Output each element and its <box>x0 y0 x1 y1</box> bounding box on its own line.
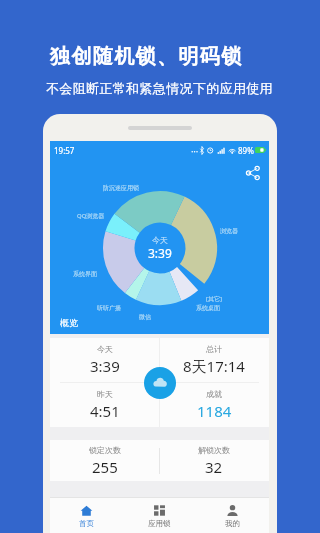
button[interactable]: 应用锁 <box>123 498 196 533</box>
staticText: QQ浏览器 <box>77 212 105 220</box>
staticText: 系统界面 <box>73 270 97 278</box>
staticText: 概览 <box>60 317 78 328</box>
staticText: 首页 <box>79 519 94 528</box>
staticText: [其它] <box>206 295 222 303</box>
staticText: 成就 <box>206 389 222 399</box>
button[interactable]: 昨天 <box>50 382 159 427</box>
staticText: 3:39 <box>148 245 172 261</box>
staticText: 3:39 <box>90 356 120 376</box>
staticText: 解锁次数 <box>198 445 230 455</box>
staticText: 浏览器 <box>220 227 238 235</box>
button[interactable]: Cloud <box>144 367 176 399</box>
staticText: 4:51 <box>90 401 120 421</box>
button[interactable]: 今天 <box>50 338 159 382</box>
staticText: 8天17:14 <box>183 356 245 376</box>
staticText: 锁定次数 <box>89 445 121 455</box>
staticText: 不会阻断正常和紧急情况下的应用使用 <box>46 80 273 96</box>
button[interactable]: 我的 <box>196 498 269 533</box>
staticText: 今天 <box>152 235 168 245</box>
staticText: 89% <box>238 145 254 156</box>
staticText: 1184 <box>197 401 232 421</box>
button[interactable]: Share <box>245 165 261 181</box>
button[interactable]: 锁定次数 <box>50 440 159 481</box>
staticText: 255 <box>92 457 118 477</box>
staticText: 独创随机锁、明码锁 <box>50 44 243 69</box>
button[interactable]: 解锁次数 <box>159 440 269 481</box>
button[interactable]: 成就 <box>159 382 269 427</box>
staticText: 昨天 <box>97 389 113 399</box>
staticText: 系统桌面 <box>196 304 220 312</box>
staticText: 总计 <box>206 344 222 354</box>
staticText: 32 <box>205 457 223 477</box>
button[interactable]: 总计 <box>159 338 269 382</box>
staticText: 防沉迷应用锁 <box>103 184 139 192</box>
staticText: 应用锁 <box>148 519 171 528</box>
staticText: 19:57 <box>54 145 75 156</box>
staticText: 微信 <box>139 313 151 321</box>
staticText: 听听广播 <box>97 304 121 312</box>
staticText: 我的 <box>225 519 240 528</box>
staticText: 今天 <box>97 344 113 354</box>
button[interactable]: 首页 <box>50 498 123 533</box>
